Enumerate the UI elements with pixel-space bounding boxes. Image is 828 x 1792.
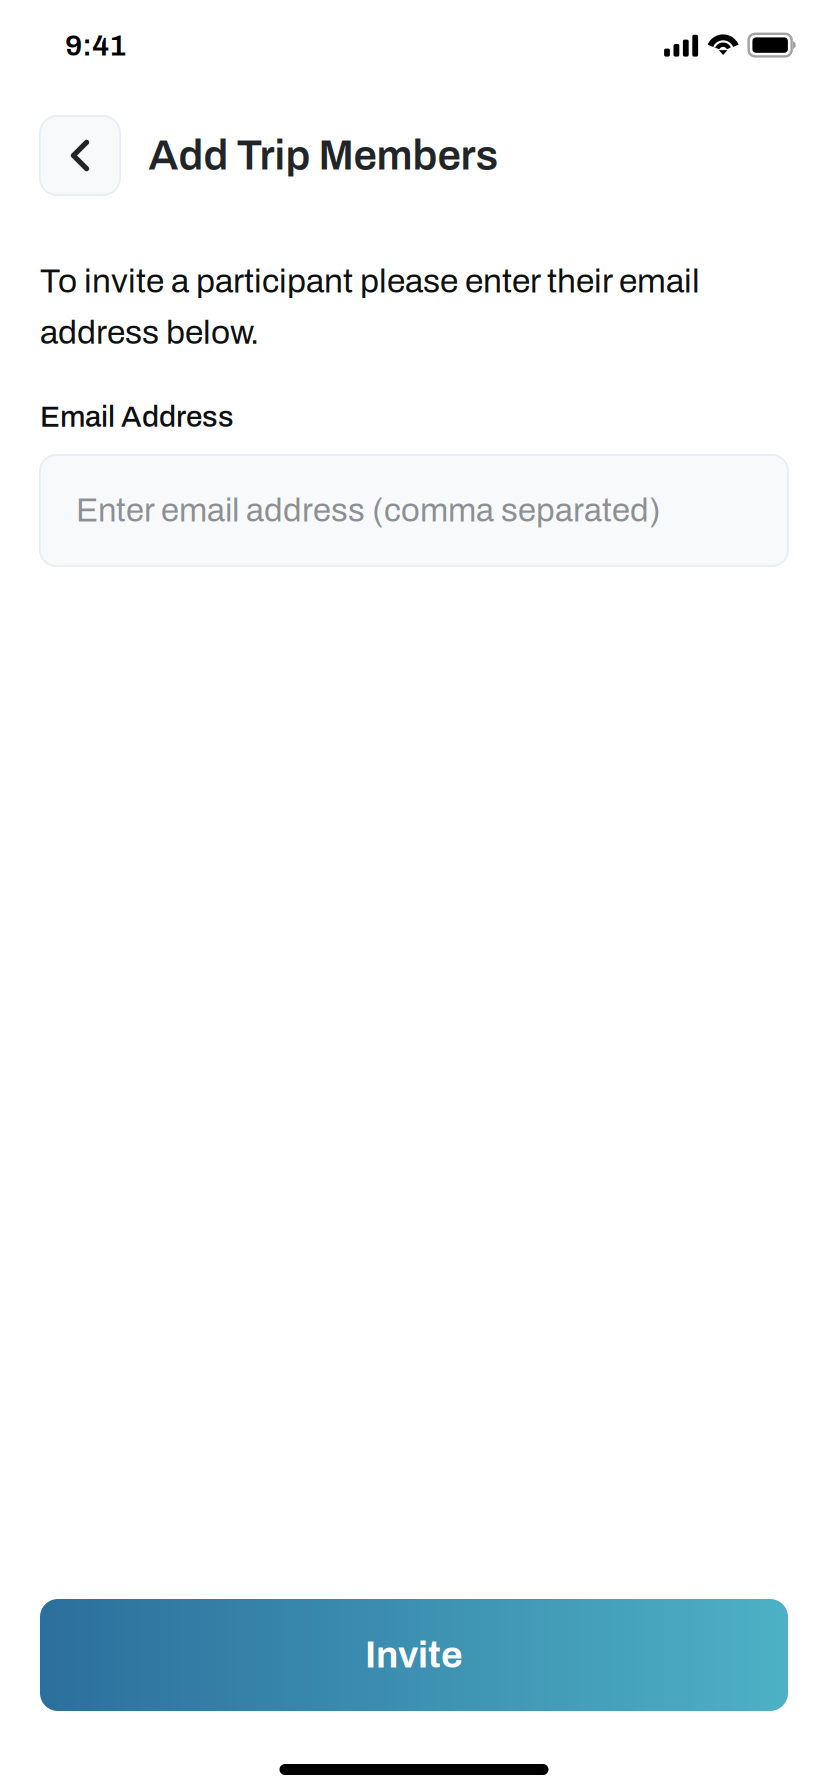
- staticText: 9:41: [65, 29, 126, 62]
- button[interactable]: Invite: [40, 1599, 788, 1711]
- staticText: Enter email address (comma separated): [76, 493, 661, 528]
- staticText: Add Trip Members: [149, 133, 499, 178]
- button[interactable]: Back: [40, 116, 120, 195]
- staticText: To invite a participant please enter the…: [40, 263, 700, 351]
- staticText: Email Address: [40, 401, 234, 433]
- staticText: Invite: [365, 1635, 463, 1675]
